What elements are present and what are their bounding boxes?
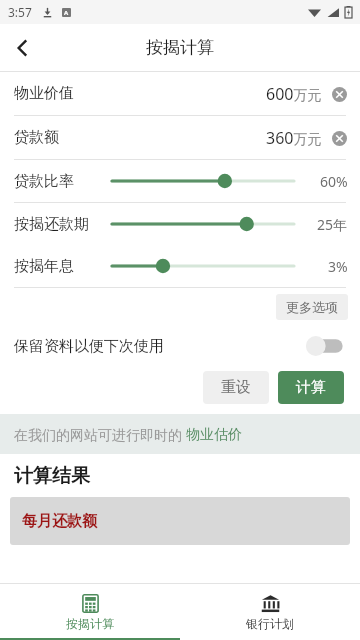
button[interactable]: 银行计划	[180, 584, 360, 640]
staticText: 60%	[320, 172, 348, 191]
button[interactable]: 更多选项	[276, 294, 348, 320]
button[interactable]: 按揭还款期	[0, 203, 360, 245]
staticText: A	[64, 9, 69, 17]
staticText: 按揭计算	[146, 37, 214, 58]
staticText: 物业估价	[186, 426, 242, 444]
button[interactable]: 计算	[278, 371, 344, 404]
staticText: 物业价值	[14, 84, 74, 103]
button[interactable]: 每月还款额	[10, 497, 350, 545]
staticText: 25年	[317, 215, 348, 234]
staticText: 每月还款额	[22, 512, 97, 531]
staticText: 3:57	[8, 4, 32, 20]
staticText: 3%	[328, 257, 348, 276]
button[interactable]: 在我们的网站可进行即时的	[0, 414, 360, 454]
staticText: 保留资料以便下次使用	[14, 337, 164, 356]
staticText: 按揭计算	[66, 616, 114, 631]
button[interactable]: 贷款额	[0, 116, 360, 159]
button[interactable]: Clear	[328, 83, 350, 105]
staticText: 重设	[221, 378, 251, 397]
staticText: 按揭年息	[14, 257, 74, 276]
button[interactable]: 按揭计算	[0, 584, 180, 640]
staticText: 600万元	[266, 83, 322, 105]
staticText: 银行计划	[246, 616, 294, 631]
staticText: 更多选项	[286, 299, 338, 315]
button[interactable]: Clear	[328, 127, 350, 149]
button[interactable]: 重设	[203, 371, 269, 404]
button[interactable]: 按揭年息	[0, 245, 360, 287]
staticText: 计算结果	[14, 464, 90, 488]
staticText: 360万元	[266, 127, 322, 149]
staticText: 贷款比率	[14, 172, 74, 191]
staticText: 贷款额	[14, 128, 59, 147]
button[interactable]: 贷款比率	[0, 160, 360, 202]
staticText: 按揭还款期	[14, 215, 89, 234]
staticText: 在我们的网站可进行即时的	[14, 425, 186, 444]
button[interactable]: Back	[0, 25, 46, 71]
staticText: 计算	[296, 378, 326, 397]
button[interactable]: 物业价值	[0, 72, 360, 115]
button[interactable]: 保留资料以便下次使用	[0, 326, 360, 366]
